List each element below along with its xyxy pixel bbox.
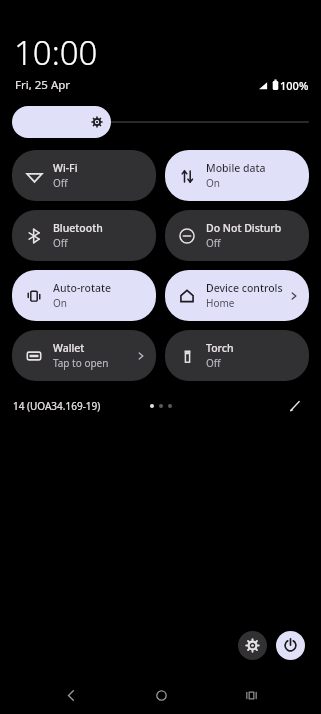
staticText: Mobile data: [206, 161, 266, 175]
button[interactable]: Wi-Fi: [12, 150, 156, 201]
button[interactable]: Recent apps: [231, 676, 271, 714]
staticText: Off: [53, 236, 68, 250]
staticText: Off: [206, 236, 221, 250]
staticText: Auto-rotate: [53, 281, 111, 295]
button[interactable]: Auto-rotate: [12, 270, 156, 321]
staticText: Device controls: [206, 281, 283, 295]
staticText: Do Not Disturb: [206, 221, 282, 235]
button[interactable]: Do Not Disturb: [165, 210, 309, 261]
staticText: Off: [206, 356, 221, 370]
button[interactable]: Back: [51, 676, 91, 714]
staticText: 100%: [280, 78, 309, 93]
staticText: Wallet: [53, 341, 85, 355]
staticText: Home: [206, 296, 235, 310]
button[interactable]: Brightness: [12, 106, 111, 138]
staticText: Tap to open: [53, 356, 109, 370]
staticText: 14 (UOA34.169-19): [13, 399, 101, 413]
staticText: 10:00: [14, 30, 98, 75]
staticText: Off: [53, 176, 68, 190]
button[interactable]: Wallet: [12, 330, 156, 381]
button[interactable]: Edit tiles: [282, 393, 308, 419]
button[interactable]: Mobile data: [165, 150, 309, 201]
staticText: Torch: [206, 341, 234, 355]
staticText: Fri, 25 Apr: [15, 77, 71, 93]
staticText: On: [206, 176, 220, 190]
staticText: Wi-Fi: [53, 161, 78, 175]
button[interactable]: Torch: [165, 330, 309, 381]
staticText: Bluetooth: [53, 221, 103, 235]
button[interactable]: Home: [141, 676, 181, 714]
staticText: On: [53, 296, 67, 310]
button[interactable]: Device controls: [165, 270, 309, 321]
button[interactable]: Bluetooth: [12, 210, 156, 261]
button[interactable]: Power: [276, 631, 305, 660]
button[interactable]: Settings: [238, 631, 267, 660]
